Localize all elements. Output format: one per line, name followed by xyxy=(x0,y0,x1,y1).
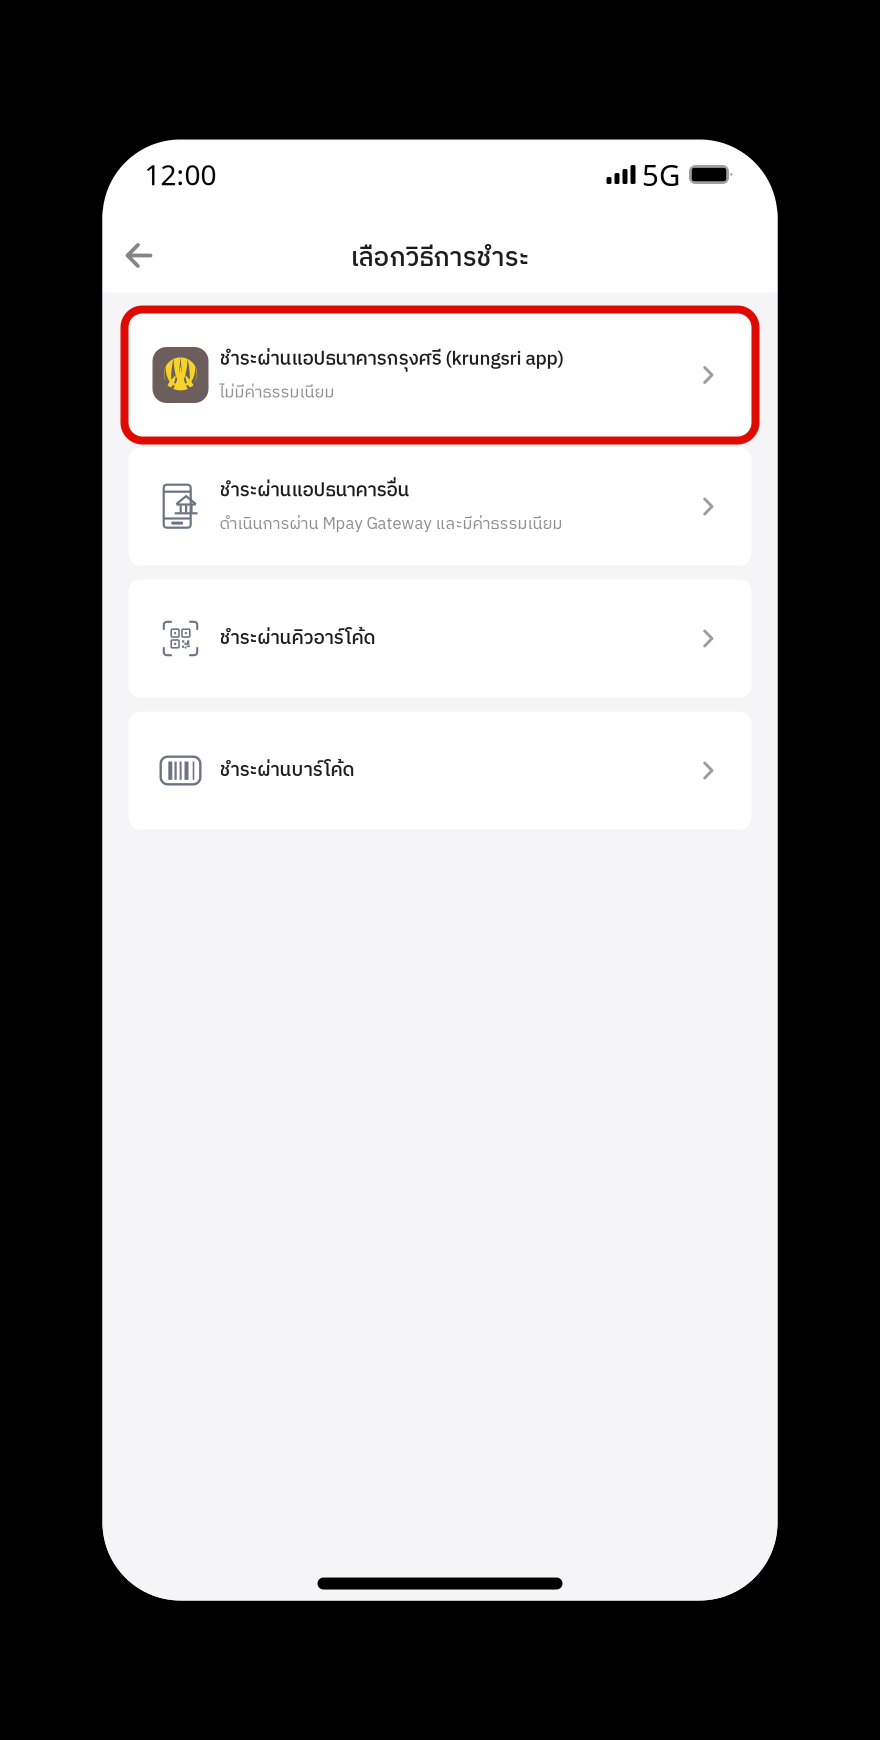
staticText: ดำเนินการผ่าน Mpay Gateway และมีค่าธรรมเ… xyxy=(219,510,562,538)
staticText: ชำระผ่านคิวอาร์โค้ด xyxy=(219,623,375,654)
staticText: ชำระผ่านแอปธนาคารกรุงศรี (krungsri app) xyxy=(219,344,563,375)
staticText: ไม่มีค่าธรรมเนียม xyxy=(219,379,334,406)
button[interactable]: ชำระผ่านแอปธนาคารกรุงศรี (krungsri app) xyxy=(128,313,751,436)
button[interactable]: Back xyxy=(116,234,167,283)
staticText: เลือกวิธีการชำระ xyxy=(350,237,529,280)
staticText: ชำระผ่านแอปธนาคารอื่น xyxy=(219,475,409,506)
button[interactable]: ชำระผ่านบาร์โค้ด xyxy=(128,711,751,829)
button[interactable]: ชำระผ่านคิวอาร์โค้ด xyxy=(128,579,751,697)
staticText: 5G xyxy=(642,155,680,194)
staticText: ชำระผ่านบาร์โค้ด xyxy=(219,755,354,786)
staticText: 12:00 xyxy=(144,156,216,193)
button[interactable]: ชำระผ่านแอปธนาคารอื่น xyxy=(128,447,751,565)
